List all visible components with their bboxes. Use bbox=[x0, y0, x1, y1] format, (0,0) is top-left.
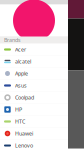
button[interactable]: Acer bbox=[0, 43, 68, 55]
button[interactable]: Lenovo bbox=[0, 139, 68, 150]
staticText: alcatel bbox=[15, 58, 31, 65]
staticText: Lenovo bbox=[15, 142, 33, 149]
button[interactable]: Asus bbox=[0, 79, 68, 91]
staticText: Apple bbox=[15, 70, 28, 77]
staticText: Coolpad bbox=[15, 94, 34, 101]
staticText: Asus bbox=[15, 82, 27, 89]
button[interactable]: Apple bbox=[0, 67, 68, 79]
button[interactable]: alcatel bbox=[0, 55, 68, 67]
staticText: HTC bbox=[15, 118, 25, 125]
button[interactable]: HP bbox=[0, 103, 68, 115]
staticText: HP bbox=[15, 106, 22, 113]
button[interactable]: Coolpad bbox=[0, 91, 68, 103]
staticText: Huawei bbox=[15, 130, 33, 137]
staticText: Acer bbox=[15, 46, 26, 53]
button[interactable]: Huawei bbox=[0, 127, 68, 139]
button[interactable]: HTC bbox=[0, 115, 68, 127]
staticText: Brands bbox=[4, 36, 21, 44]
